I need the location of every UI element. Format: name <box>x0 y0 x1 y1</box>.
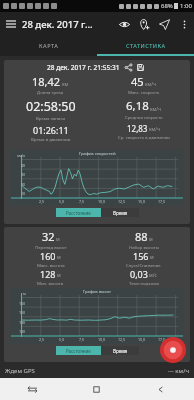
button[interactable]: Recents <box>0 378 64 400</box>
staticText: Время <box>113 210 128 216</box>
staticText: 17,5 <box>158 337 166 342</box>
button[interactable]: Save <box>135 62 146 73</box>
button[interactable]: Home <box>64 378 129 400</box>
staticText: Мин. высота <box>37 280 64 286</box>
button[interactable]: Время <box>101 208 139 217</box>
staticText: 45 <box>131 74 144 89</box>
staticText: 68% <box>161 2 173 10</box>
button[interactable]: Add location <box>134 14 154 34</box>
staticText: Набор высоты <box>129 244 159 250</box>
staticText: 28 дек. 2017 г. 21:55:31 <box>47 63 120 72</box>
staticText: 5,0 <box>59 337 65 342</box>
staticText: Средняя скорость <box>125 114 163 120</box>
staticText: График скоростей <box>79 151 116 157</box>
button[interactable]: Время <box>101 346 139 355</box>
staticText: м/с <box>149 272 157 279</box>
staticText: м <box>149 236 153 243</box>
staticText: 15,0 <box>138 337 146 342</box>
button[interactable]: Share <box>123 62 134 73</box>
staticText: Ср. скорость в движении <box>118 134 170 140</box>
staticText: 01:26:11 <box>33 124 69 136</box>
button[interactable]: Navigate <box>154 14 174 34</box>
staticText: 0,03 <box>130 268 148 280</box>
staticText: м <box>150 254 154 261</box>
staticText: 12,5 <box>118 337 126 342</box>
button[interactable]: Start recording <box>160 337 186 363</box>
staticText: 128 <box>40 268 56 280</box>
staticText: 88 <box>135 229 148 244</box>
staticText: 156 <box>133 250 149 262</box>
staticText: Макс. высота <box>37 262 65 268</box>
staticText: 130 <box>19 329 26 334</box>
staticText: --- км/ч <box>168 367 189 375</box>
staticText: Макс. скорость <box>128 89 160 95</box>
staticText: Расстояние <box>66 348 91 354</box>
staticText: 7,5 <box>79 337 85 342</box>
staticText: График высот <box>83 289 111 295</box>
staticText: 15,0 <box>138 199 146 204</box>
staticText: м <box>56 236 60 243</box>
staticText: км/ч <box>17 153 26 158</box>
button[interactable]: Расстояние <box>56 208 101 217</box>
staticText: Расстояние <box>66 210 91 216</box>
staticText: 17,5 <box>158 199 166 204</box>
staticText: 10 <box>21 191 26 196</box>
staticText: 2,5 <box>39 337 45 342</box>
staticText: 2,5 <box>39 199 45 204</box>
staticText: км/ч <box>145 81 156 88</box>
staticText: 7,5 <box>79 199 85 204</box>
staticText: 30 <box>21 172 26 177</box>
staticText: 150 <box>19 310 26 315</box>
staticText: м <box>57 272 61 279</box>
staticText: м <box>23 291 26 296</box>
staticText: Ждем GPS <box>5 367 35 375</box>
staticText: Время записи <box>36 115 66 121</box>
button[interactable]: Расстояние <box>56 346 101 355</box>
staticText: 12,83 <box>127 123 148 134</box>
staticText: 10,0 <box>98 337 106 342</box>
staticText: 140 <box>19 320 26 325</box>
staticText: Темп подъема <box>129 280 159 286</box>
staticText: Перепад высот <box>35 244 67 250</box>
staticText: 20 <box>21 182 26 187</box>
staticText: м <box>57 254 61 261</box>
staticText: 6,18 <box>126 98 149 114</box>
staticText: 12,5 <box>118 199 126 204</box>
staticText: 18,42 <box>32 74 61 89</box>
staticText: 5,0 <box>59 199 65 204</box>
button[interactable]: Menu <box>0 13 22 35</box>
staticText: 10,0 <box>98 199 106 204</box>
button[interactable]: СТАТИСТИКА <box>97 36 194 54</box>
staticText: км <box>62 81 69 88</box>
staticText: 40 <box>21 163 26 168</box>
staticText: Время в движении <box>31 136 71 142</box>
staticText: Длина трека <box>37 89 64 95</box>
button[interactable]: Visibility <box>114 14 134 34</box>
staticText: 160 <box>40 250 56 262</box>
staticText: 28 дек. 2017 г... <box>22 18 93 31</box>
staticText: КАРТА <box>39 42 59 49</box>
staticText: Спуск/Снижение <box>126 262 161 268</box>
staticText: СТАТИСТИКА <box>126 42 166 49</box>
staticText: Время <box>113 348 128 354</box>
staticText: км/ч <box>150 106 161 113</box>
button[interactable]: КАРТА <box>0 36 97 54</box>
staticText: км/ч <box>149 126 160 133</box>
staticText: 02:58:50 <box>26 98 76 115</box>
button[interactable]: More options <box>174 14 194 34</box>
button[interactable]: Back <box>129 378 194 400</box>
staticText: 160 <box>19 301 26 306</box>
staticText: 32 <box>42 229 55 244</box>
staticText: 1:00 <box>180 2 192 10</box>
